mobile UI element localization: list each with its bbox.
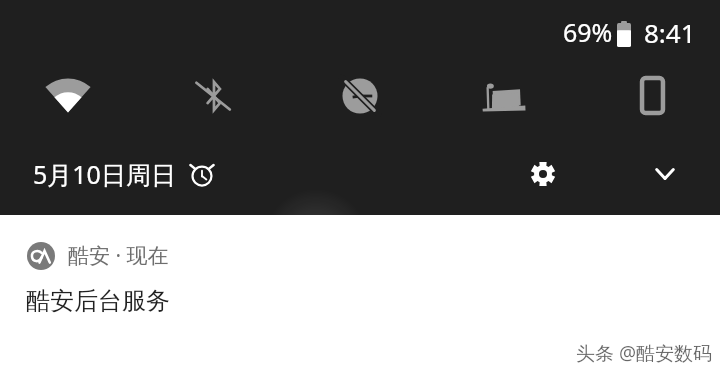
staticText: 5月10日周日 xyxy=(33,157,176,191)
staticText: 69% xyxy=(563,15,613,49)
staticText: 酷安后台服务 xyxy=(26,286,170,316)
staticText: 酷安 · 现在 xyxy=(68,241,169,270)
button[interactable]: Flashlight xyxy=(466,58,538,130)
button[interactable]: 酷安 · 现在 xyxy=(0,215,720,316)
staticText: 头条 @酷安数码 xyxy=(577,341,714,367)
button[interactable]: Wi-Fi xyxy=(32,61,104,133)
button[interactable]: Do not disturb xyxy=(324,60,396,132)
button[interactable]: Auto rotate xyxy=(616,59,688,131)
button[interactable]: Bluetooth off xyxy=(176,60,248,132)
staticText: 头条 @酷安数码 xyxy=(576,340,713,366)
button[interactable]: Collapse xyxy=(643,152,687,196)
button[interactable]: Settings xyxy=(521,152,565,196)
staticText: 8:41 xyxy=(644,15,696,50)
